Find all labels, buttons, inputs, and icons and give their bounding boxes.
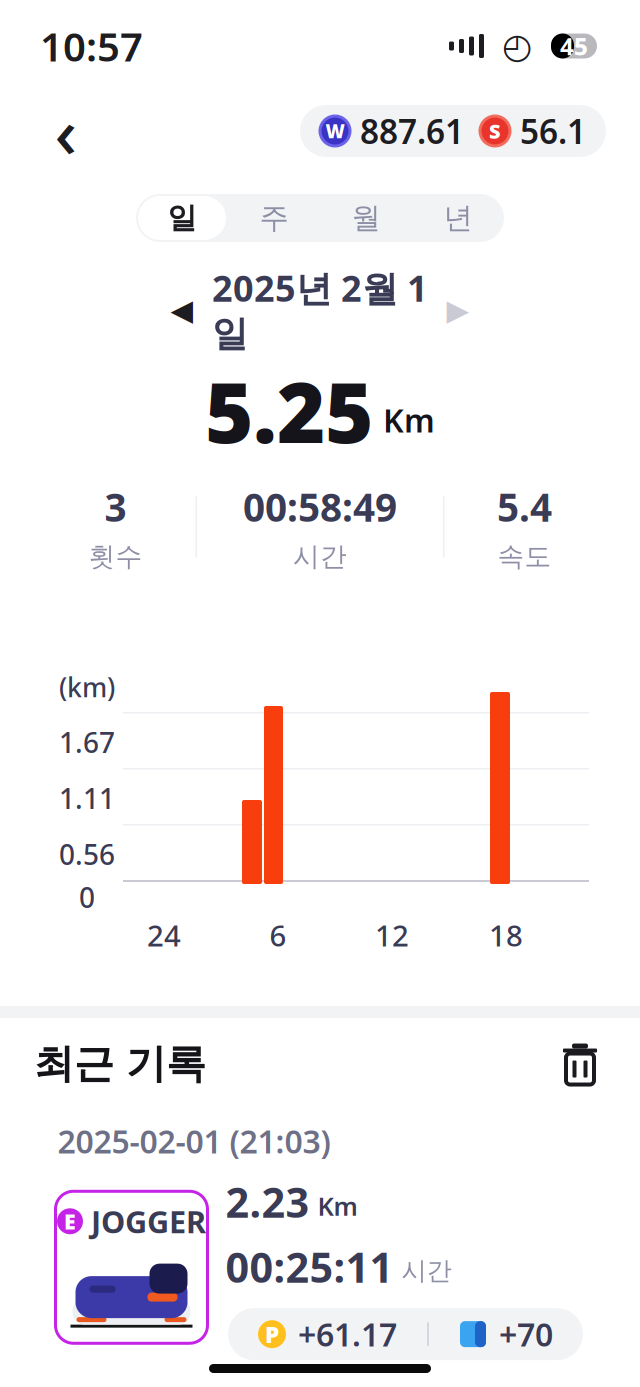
staticText: 주 (259, 200, 288, 236)
button[interactable]: 일 (136, 194, 228, 242)
staticText: 887.61 (360, 109, 464, 153)
button[interactable]: 2025-02-01 (21:03) (35, 1128, 604, 1340)
staticText: ◀ (170, 293, 193, 327)
staticText: S (489, 118, 501, 144)
staticText: 2025년 2월 1일 (212, 264, 428, 356)
button[interactable]: W (300, 105, 606, 157)
staticText: 5.4 (497, 481, 552, 532)
staticText: 시간 (293, 540, 347, 573)
staticText: ▶ (446, 293, 469, 327)
staticText: 년 (443, 200, 472, 236)
staticText: ‹ (54, 85, 77, 177)
staticText: 1.11 (59, 779, 115, 817)
button[interactable]: 다음 날짜 (430, 286, 486, 334)
staticText: 00:25:11 (225, 1239, 393, 1294)
staticText: +61.17 (298, 1313, 397, 1355)
staticText: 2025-02-01 (21:03) (57, 1120, 330, 1162)
staticText: 월 (351, 200, 380, 236)
staticText: 18 (489, 915, 523, 954)
staticText: 5.25 (205, 356, 373, 466)
staticText: 2.23 (225, 1174, 309, 1229)
button[interactable]: 뒤로 (34, 99, 98, 163)
staticText: Km (383, 399, 435, 441)
button[interactable]: 이전 날짜 (154, 286, 210, 334)
staticText: 횟수 (88, 540, 142, 573)
button[interactable]: 년 (412, 194, 504, 242)
staticText: 56.1 (520, 109, 586, 153)
staticText: E (64, 1207, 76, 1235)
staticText: JOGGER (91, 1201, 206, 1242)
staticText: 0.56 (59, 835, 115, 873)
staticText: W (325, 119, 344, 143)
staticText: 45 (560, 30, 588, 62)
staticText: 12 (375, 915, 409, 954)
staticText: 일 (167, 200, 196, 236)
staticText: 6 (269, 915, 286, 954)
staticText: 최근 기록 (34, 1039, 206, 1089)
staticText: 10:57 (40, 19, 143, 72)
staticText: 시간 (401, 1255, 451, 1286)
button[interactable]: 주 (228, 194, 320, 242)
staticText: 24 (147, 915, 181, 954)
button[interactable]: 월 (320, 194, 412, 242)
staticText: (km) (59, 669, 115, 705)
staticText: +70 (499, 1313, 553, 1355)
staticText: 속도 (497, 540, 551, 573)
staticText: 45 (560, 30, 588, 62)
staticText: ◴ (502, 26, 532, 66)
staticText: 1.67 (59, 723, 115, 761)
button[interactable]: 기록 삭제 (554, 1038, 606, 1090)
staticText: P (265, 1319, 279, 1349)
staticText: Km (317, 1189, 357, 1223)
staticText: 0 (79, 878, 95, 916)
staticText: 3 (104, 481, 126, 532)
staticText: 00:58:49 (243, 481, 397, 532)
